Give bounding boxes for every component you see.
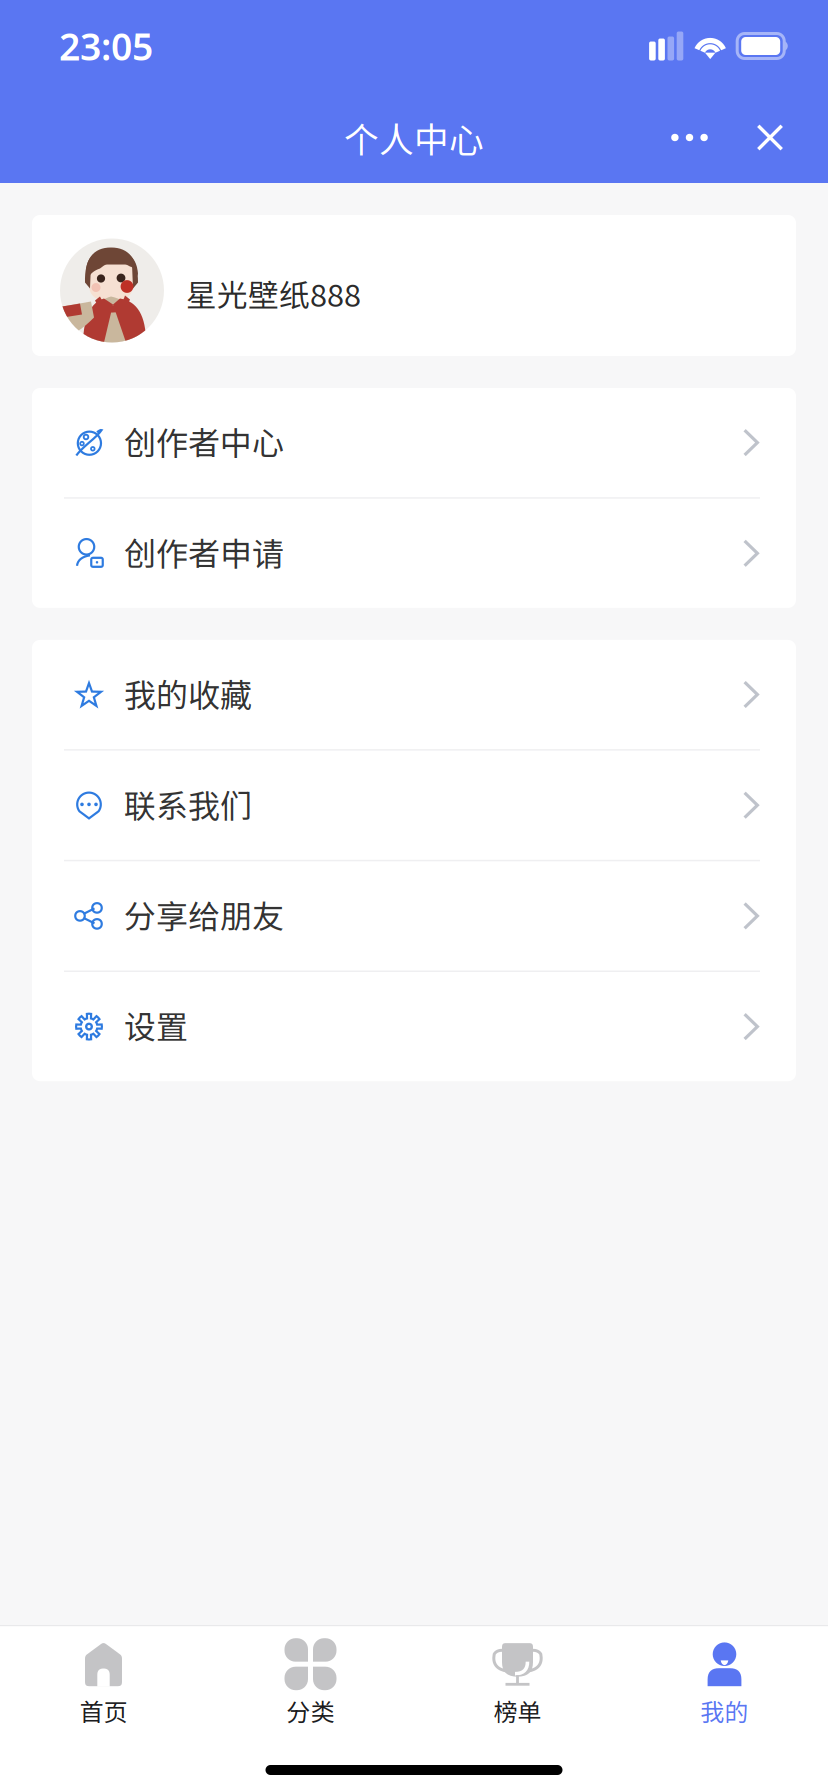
staticText: 创作者中心: [124, 418, 284, 464]
staticText: 星光壁纸888: [186, 271, 361, 316]
button[interactable]: Close: [734, 102, 806, 172]
staticText: 我的收藏: [124, 670, 252, 716]
button[interactable]: More options: [645, 102, 734, 172]
staticText: 榜单: [493, 1693, 541, 1728]
staticText: 个人中心: [344, 112, 484, 163]
button[interactable]: 创作者申请: [32, 499, 796, 608]
button[interactable]: 设置: [32, 972, 796, 1081]
staticText: 我的: [700, 1693, 748, 1728]
button[interactable]: 我的: [621, 1626, 828, 1738]
button[interactable]: 分类: [207, 1626, 414, 1738]
button[interactable]: 我的收藏: [32, 640, 796, 749]
staticText: 分享给朋友: [124, 891, 284, 937]
button[interactable]: 联系我们: [32, 751, 796, 860]
staticText: 联系我们: [124, 780, 252, 827]
staticText: 23:05: [59, 21, 153, 71]
button[interactable]: 星光壁纸888: [32, 215, 796, 356]
button[interactable]: 创作者中心: [32, 388, 796, 497]
button[interactable]: 榜单: [414, 1626, 621, 1738]
staticText: 分类: [286, 1693, 334, 1728]
staticText: 设置: [124, 1002, 188, 1048]
staticText: 创作者申请: [124, 529, 284, 575]
button[interactable]: 首页: [0, 1626, 207, 1738]
button[interactable]: 分享给朋友: [32, 861, 796, 970]
staticText: 首页: [79, 1693, 127, 1728]
